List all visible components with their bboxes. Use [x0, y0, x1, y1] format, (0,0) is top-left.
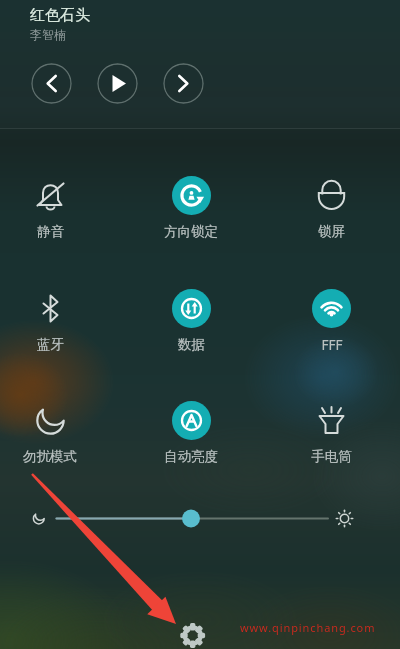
staticText: www.qinpinchang.com [240, 620, 376, 635]
staticText: 勿扰模式 [23, 448, 77, 465]
button[interactable]: 手电筒 [286, 401, 376, 471]
button[interactable]: Play [97, 63, 138, 104]
staticText: 数据 [178, 336, 205, 353]
staticText: 锁屏 [318, 223, 345, 240]
button[interactable]: Brightness [0, 498, 400, 540]
button[interactable]: 蓝牙 [5, 289, 95, 359]
button[interactable]: Next [163, 63, 204, 104]
staticText: 自动亮度 [164, 448, 218, 465]
staticText: 方向锁定 [164, 223, 218, 240]
button[interactable]: 静音 [5, 176, 95, 246]
button[interactable]: 锁屏 [286, 176, 376, 246]
button[interactable]: 自动亮度 [146, 401, 236, 471]
staticText: FFF [321, 336, 343, 354]
button[interactable]: 数据 [146, 289, 236, 359]
button[interactable]: 方向锁定 [146, 176, 236, 246]
button[interactable]: FFF [286, 289, 376, 359]
button[interactable]: Previous [31, 63, 72, 104]
button[interactable]: Settings [173, 616, 213, 649]
staticText: 李智楠 [30, 27, 66, 42]
button[interactable]: 勿扰模式 [5, 401, 95, 471]
staticText: 手电筒 [311, 448, 352, 465]
staticText: 红色石头 [30, 6, 90, 25]
staticText: 蓝牙 [37, 336, 64, 353]
staticText: 静音 [37, 223, 64, 240]
